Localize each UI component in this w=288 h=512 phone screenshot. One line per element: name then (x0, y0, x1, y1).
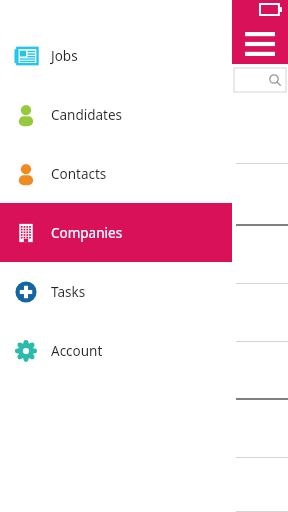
button[interactable]: Search (234, 68, 286, 92)
staticText: Account (51, 342, 103, 360)
button[interactable] (232, 342, 288, 400)
button[interactable] (232, 92, 288, 164)
button[interactable]: Account (0, 321, 232, 380)
button[interactable] (232, 226, 288, 284)
button[interactable]: Contacts (0, 144, 232, 203)
button[interactable] (232, 284, 288, 342)
button[interactable] (232, 164, 288, 226)
staticText: Candidates (51, 106, 123, 124)
staticText: Contacts (51, 165, 107, 183)
button[interactable] (232, 458, 288, 512)
button[interactable]: Open navigation menu (245, 32, 275, 56)
staticText: Jobs (51, 47, 78, 65)
button[interactable]: Tasks (0, 262, 232, 321)
button[interactable]: Jobs (0, 26, 232, 85)
button[interactable]: Companies (0, 203, 232, 262)
button[interactable] (232, 400, 288, 458)
staticText: Tasks (51, 283, 86, 301)
button[interactable]: Candidates (0, 85, 232, 144)
staticText: Companies (51, 224, 123, 242)
